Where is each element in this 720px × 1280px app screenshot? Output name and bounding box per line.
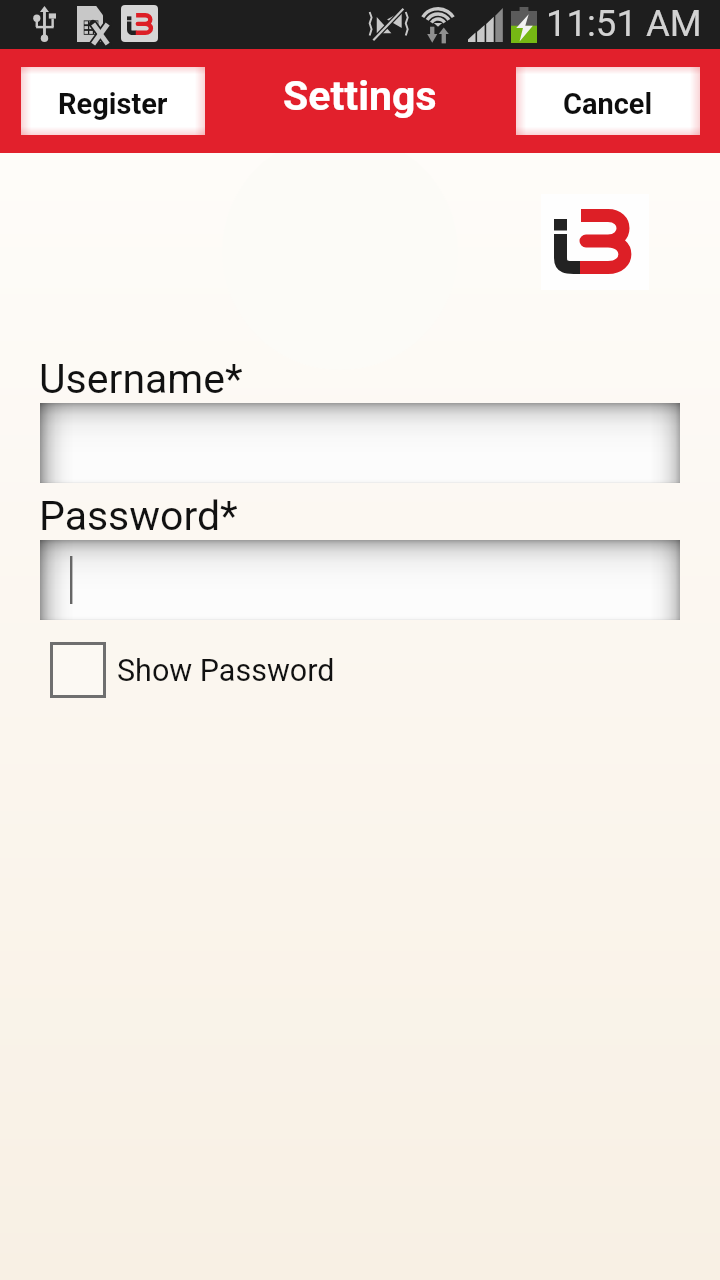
- button[interactable]: Cancel: [516, 67, 700, 135]
- staticText: Password*: [39, 492, 238, 540]
- staticText: Show Password: [117, 653, 335, 689]
- button[interactable]: Register: [21, 67, 205, 135]
- button[interactable]: Show Password: [50, 642, 335, 698]
- staticText: Register: [58, 87, 168, 121]
- staticText: Settings: [283, 72, 437, 120]
- staticText: Cancel: [563, 87, 653, 121]
- button[interactable]: Username input field: [40, 403, 680, 483]
- staticText: Username*: [39, 355, 243, 403]
- staticText: 11:51 AM: [546, 2, 702, 45]
- button[interactable]: Password input field: [40, 540, 680, 620]
